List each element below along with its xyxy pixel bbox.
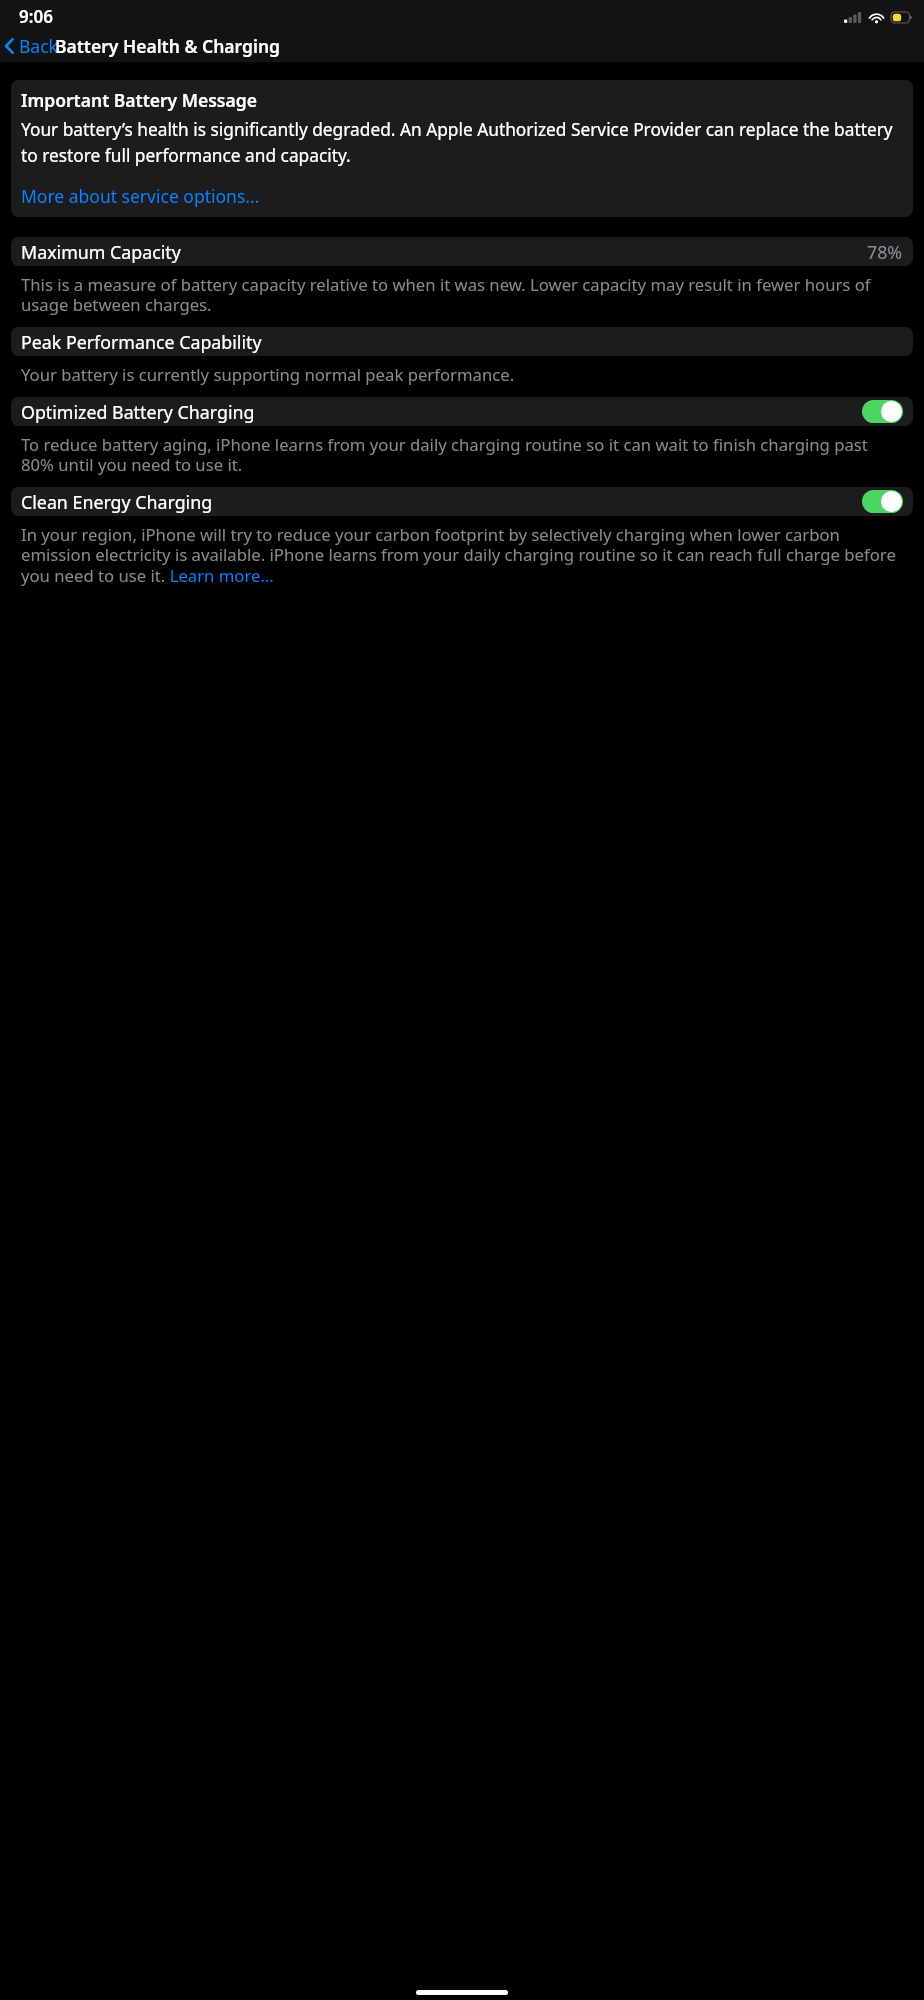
staticText: Your battery is currently supporting nor… — [21, 363, 515, 386]
staticText: Peak Performance Capability — [21, 330, 262, 354]
staticText: Battery Health & Charging — [55, 34, 280, 58]
staticText: 78% — [867, 240, 903, 264]
staticText: Optimized Battery Charging — [21, 400, 255, 424]
button[interactable]: Maximum Capacity — [11, 237, 913, 266]
button[interactable]: Back — [0, 30, 64, 62]
staticText: 9:06 — [19, 5, 53, 28]
button[interactable]: Peak Performance Capability — [11, 327, 913, 356]
button[interactable]: Optimized Battery Charging — [11, 397, 913, 426]
staticText: To reduce battery aging, iPhone learns f… — [21, 433, 903, 476]
staticText: In your region, iPhone will try to reduc… — [21, 523, 903, 587]
button[interactable]: Clean Energy Charging — [862, 490, 903, 513]
staticText: Maximum Capacity — [21, 240, 181, 264]
staticText: Clean Energy Charging — [21, 490, 213, 514]
button[interactable]: Optimized Battery Charging — [862, 400, 903, 423]
staticText: Your battery’s health is significantly d… — [21, 118, 903, 167]
staticText: This is a measure of battery capacity re… — [21, 273, 903, 316]
staticText: Back — [19, 34, 58, 58]
staticText: Important Battery Message — [21, 88, 257, 112]
staticText: More about service options... — [21, 184, 260, 208]
button[interactable]: More about service options... — [11, 175, 913, 217]
button[interactable]: Clean Energy Charging — [11, 487, 913, 516]
